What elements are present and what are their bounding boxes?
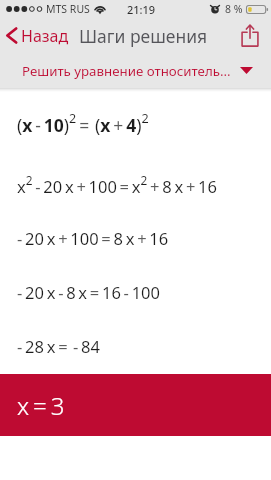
staticText: (x - 10)2 = (x + 4)2: [17, 110, 149, 137]
staticText: x2 - 20 x + 100 = x2 + 8 x + 16: [17, 172, 217, 197]
staticText: 8 %: [225, 2, 243, 16]
button[interactable]: Решить уравнение относитель...: [0, 53, 271, 88]
staticText: Решить уравнение относитель...: [22, 62, 231, 80]
button[interactable]: Поделиться: [233, 18, 271, 53]
button[interactable]: Назад: [0, 18, 73, 53]
staticText: 21:19: [127, 2, 156, 17]
staticText: Назад: [21, 25, 69, 47]
staticText: - 28 x = - 84: [17, 335, 100, 357]
staticText: - 20 x - 8 x = 16 - 100: [17, 281, 160, 303]
staticText: MTS RUS: [46, 2, 90, 16]
staticText: x = 3: [17, 389, 65, 422]
staticText: Шаги решения: [79, 24, 208, 48]
staticText: - 20 x + 100 = 8 x + 16: [17, 227, 169, 249]
